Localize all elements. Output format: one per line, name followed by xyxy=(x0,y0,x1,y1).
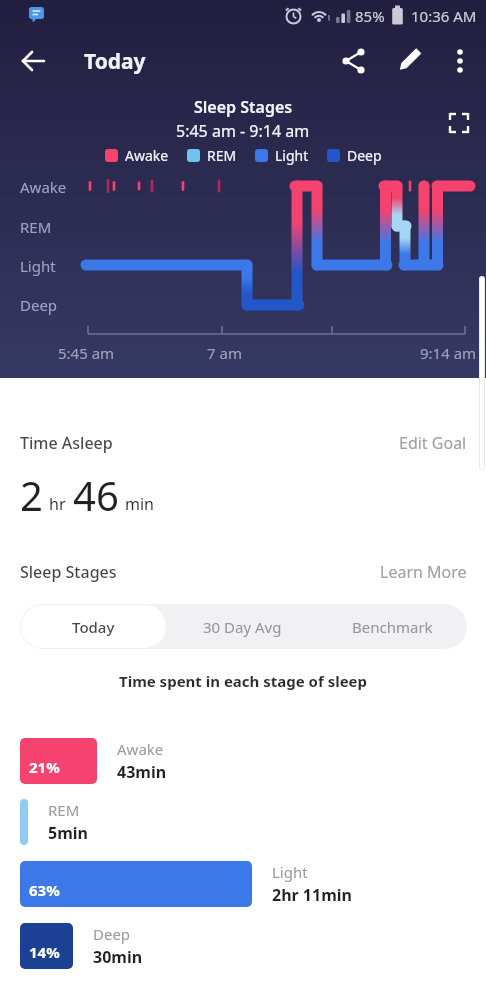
staticText: 5:45 am - 9:14 am xyxy=(176,120,310,142)
staticText: 7 am xyxy=(207,343,242,363)
staticText: 85% xyxy=(355,6,385,26)
button[interactable] xyxy=(14,43,52,79)
button[interactable]: Benchmark xyxy=(317,604,467,649)
staticText: Time spent in each stage of sleep xyxy=(119,671,368,691)
staticText: 5min xyxy=(48,822,88,844)
staticText: 46 xyxy=(73,468,119,522)
staticText: 14% xyxy=(29,942,60,962)
staticText: Today xyxy=(84,47,146,76)
staticText: Sleep Stages xyxy=(20,561,117,583)
staticText: Awake xyxy=(20,177,67,197)
staticText: 5:45 am xyxy=(58,343,115,363)
staticText: Deep xyxy=(93,924,131,944)
staticText: 9:14 am xyxy=(420,343,477,363)
staticText: Sleep Stages xyxy=(194,96,293,118)
button[interactable] xyxy=(445,44,475,78)
staticText: Deep xyxy=(20,295,58,315)
staticText: Light xyxy=(20,256,56,276)
staticText: Benchmark xyxy=(352,617,433,637)
staticText: Time Asleep xyxy=(20,432,113,454)
button[interactable] xyxy=(338,44,370,78)
staticText: 2 xyxy=(20,468,43,522)
staticText: hr xyxy=(49,493,66,515)
staticText: Today xyxy=(72,617,115,637)
staticText: REM xyxy=(48,800,80,820)
button[interactable] xyxy=(444,108,474,138)
button[interactable]: Learn More xyxy=(380,561,467,583)
staticText: 43min xyxy=(117,761,167,783)
staticText: 30min xyxy=(93,946,143,968)
staticText: REM xyxy=(207,146,237,165)
staticText: REM xyxy=(20,217,52,237)
button[interactable] xyxy=(394,44,426,78)
staticText: Light xyxy=(272,862,308,882)
button[interactable]: Edit Goal xyxy=(399,432,467,454)
staticText: 21% xyxy=(29,757,60,777)
staticText: Light xyxy=(275,146,309,165)
staticText: Deep xyxy=(347,146,382,165)
staticText: 2hr 11min xyxy=(272,884,352,906)
staticText: 63% xyxy=(29,880,60,900)
staticText: Awake xyxy=(125,146,169,165)
button[interactable]: Today xyxy=(20,604,167,649)
staticText: Awake xyxy=(117,739,164,759)
button[interactable]: 30 Day Avg xyxy=(167,604,317,649)
staticText: 10:36 AM xyxy=(411,6,477,26)
staticText: min xyxy=(125,493,154,515)
staticText: 30 Day Avg xyxy=(203,617,282,637)
